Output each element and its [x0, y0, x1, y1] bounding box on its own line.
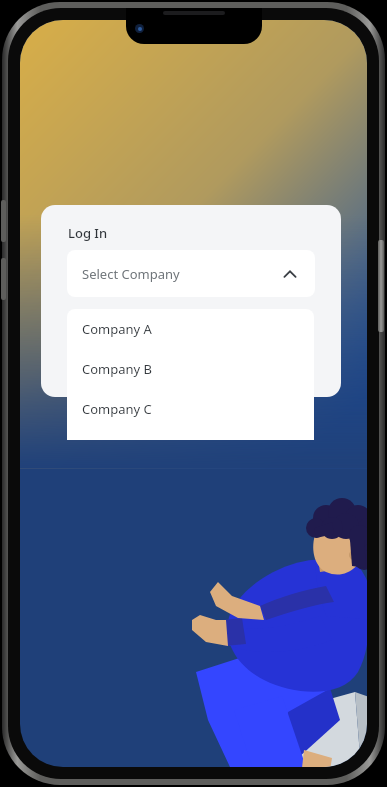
- staticText: Select Company: [82, 265, 180, 283]
- staticText: Company C: [82, 400, 152, 418]
- staticText: Log In: [68, 224, 108, 242]
- button[interactable]: Company A: [67, 309, 314, 349]
- button[interactable]: Select Company dropdown: [67, 250, 315, 297]
- staticText: Company B: [82, 360, 153, 378]
- button[interactable]: Company C: [67, 389, 314, 429]
- button[interactable]: Company B: [67, 349, 314, 389]
- staticText: Company A: [82, 320, 152, 338]
